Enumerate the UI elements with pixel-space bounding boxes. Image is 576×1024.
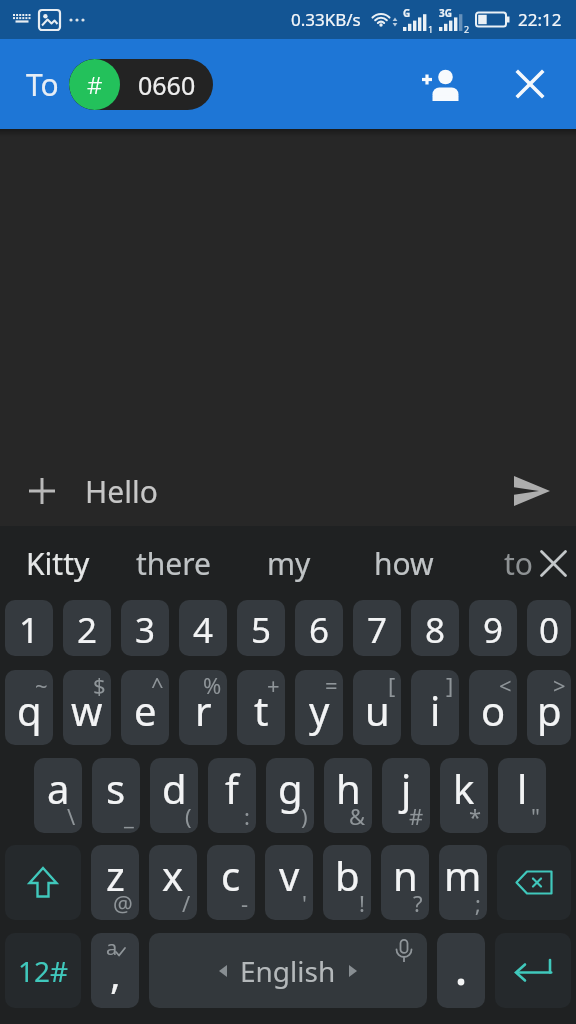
button[interactable]: 3 <box>121 600 169 656</box>
button[interactable] <box>506 60 554 108</box>
staticText: ; <box>475 888 481 918</box>
button[interactable]: x <box>149 845 197 920</box>
staticText: To <box>26 64 59 105</box>
staticText: how <box>374 543 434 584</box>
staticText: 3 <box>135 606 156 654</box>
button[interactable] <box>18 467 66 515</box>
button[interactable]: b <box>323 845 371 920</box>
button[interactable]: v <box>265 845 313 920</box>
staticText: " <box>531 801 540 831</box>
staticText: c <box>221 848 241 902</box>
staticText: t <box>254 683 269 737</box>
staticText: 0.33KB/s <box>291 8 361 31</box>
button[interactable]: w <box>63 670 111 745</box>
button[interactable]: 6 <box>295 600 343 656</box>
staticText: w <box>71 683 103 737</box>
staticText: z <box>106 848 125 902</box>
staticText: 0 <box>539 606 560 654</box>
button[interactable]: h <box>324 758 372 833</box>
staticText: ' <box>302 888 307 918</box>
button[interactable]: to <box>461 526 576 600</box>
staticText: my <box>267 543 311 584</box>
button[interactable]: o <box>469 670 517 745</box>
button[interactable]: English <box>149 933 427 1008</box>
staticText: # <box>87 68 103 101</box>
staticText: e <box>134 683 157 737</box>
staticText: p <box>537 683 562 737</box>
button[interactable]: 2 <box>63 600 111 656</box>
button[interactable]: 5 <box>237 600 285 656</box>
button[interactable]: a <box>34 758 82 833</box>
staticText: % <box>203 670 222 700</box>
button[interactable]: t <box>237 670 285 745</box>
button[interactable]: i <box>411 670 459 745</box>
staticText: > <box>553 670 566 700</box>
button[interactable]: # <box>69 59 213 110</box>
button[interactable]: g <box>266 758 314 833</box>
button[interactable]: my <box>231 526 346 600</box>
staticText: u <box>365 683 390 737</box>
button[interactable] <box>437 933 485 1008</box>
staticText: \ <box>67 801 76 831</box>
staticText: ( <box>185 801 192 831</box>
staticText: 2 <box>77 606 98 654</box>
button[interactable]: d <box>150 758 198 833</box>
staticText: d <box>162 761 187 815</box>
staticText: G <box>403 6 411 20</box>
button[interactable]: a <box>91 933 139 1008</box>
button[interactable]: m <box>439 845 487 920</box>
staticText: 6 <box>309 606 330 654</box>
button[interactable]: there <box>116 526 231 600</box>
staticText: < <box>499 670 512 700</box>
button[interactable]: 4 <box>179 600 227 656</box>
button[interactable] <box>497 845 571 920</box>
staticText: English <box>240 952 336 990</box>
staticText: 1 <box>19 606 40 654</box>
button[interactable]: q <box>5 670 53 745</box>
button[interactable]: 7 <box>353 600 401 656</box>
staticText: 5 <box>251 606 272 654</box>
button[interactable]: u <box>353 670 401 745</box>
staticText: x <box>162 848 184 902</box>
button[interactable]: Kitty <box>0 526 116 600</box>
staticText: , <box>110 946 121 1000</box>
button[interactable] <box>495 933 571 1008</box>
button[interactable]: 8 <box>411 600 459 656</box>
staticText: b <box>335 848 360 902</box>
staticText: 4 <box>193 606 214 654</box>
button[interactable] <box>530 540 576 586</box>
staticText: j <box>401 761 412 815</box>
staticText: 7 <box>367 606 388 654</box>
button[interactable]: f <box>208 758 256 833</box>
button[interactable]: how <box>346 526 461 600</box>
button[interactable] <box>508 467 556 515</box>
button[interactable] <box>417 60 465 108</box>
staticText: Hello <box>85 471 158 512</box>
staticText: i <box>430 683 441 737</box>
button[interactable]: 1 <box>5 600 53 656</box>
staticText: / <box>182 888 191 918</box>
staticText: f <box>225 761 239 815</box>
button[interactable] <box>5 845 81 920</box>
button[interactable]: n <box>381 845 429 920</box>
button[interactable]: 12# <box>5 933 81 1008</box>
button[interactable]: l <box>498 758 546 833</box>
button[interactable]: j <box>382 758 430 833</box>
button[interactable]: e <box>121 670 169 745</box>
button[interactable]: k <box>440 758 488 833</box>
button[interactable]: z <box>91 845 139 920</box>
button[interactable]: p <box>527 670 571 745</box>
staticText: 2 <box>464 23 470 35</box>
staticText: & <box>349 801 366 831</box>
button[interactable]: r <box>179 670 227 745</box>
staticText: 9 <box>483 606 504 654</box>
staticText: 0660 <box>138 68 196 102</box>
button[interactable]: 9 <box>469 600 517 656</box>
button[interactable]: c <box>207 845 255 920</box>
staticText: ^ <box>151 670 164 700</box>
button[interactable]: s <box>92 758 140 833</box>
button[interactable]: 0 <box>527 600 571 656</box>
staticText: + <box>267 670 280 700</box>
button[interactable]: y <box>295 670 343 745</box>
staticText: ! <box>359 888 365 918</box>
